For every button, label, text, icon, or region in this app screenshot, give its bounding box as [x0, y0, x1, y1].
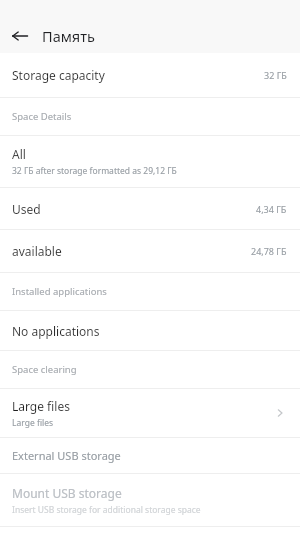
staticText: All: [12, 146, 26, 162]
staticText: Used: [12, 201, 41, 217]
button[interactable]: External USB storage: [0, 438, 300, 473]
staticText: Storage capacity: [12, 67, 105, 83]
staticText: Installed applications: [12, 285, 107, 298]
staticText: Space Details: [12, 110, 72, 123]
button[interactable]: Large files: [0, 389, 300, 437]
button[interactable]: Used: [0, 188, 300, 229]
staticText: available: [12, 243, 62, 259]
button[interactable]: No applications: [0, 311, 300, 350]
button[interactable]: available: [0, 230, 300, 272]
button[interactable]: Storage capacity: [0, 53, 300, 97]
staticText: No applications: [12, 323, 100, 339]
staticText: 24,78 ГБ: [251, 245, 287, 257]
staticText: 32 ГБ after storage formatted as 29,12 Г…: [12, 165, 177, 177]
staticText: Mount USB storage: [12, 485, 122, 501]
staticText: External USB storage: [12, 448, 121, 463]
staticText: Insert USB storage for additional storag…: [12, 504, 201, 516]
staticText: Память: [42, 26, 95, 46]
staticText: 4,34 ГБ: [256, 203, 287, 215]
staticText: Large files: [12, 417, 54, 429]
staticText: Large files: [12, 398, 70, 414]
button[interactable]: Mount USB storage: [0, 474, 300, 526]
button[interactable]: All: [0, 136, 300, 187]
staticText: 32 ГБ: [264, 69, 287, 81]
button[interactable]: Back: [6, 22, 34, 50]
staticText: Space clearing: [12, 363, 77, 376]
